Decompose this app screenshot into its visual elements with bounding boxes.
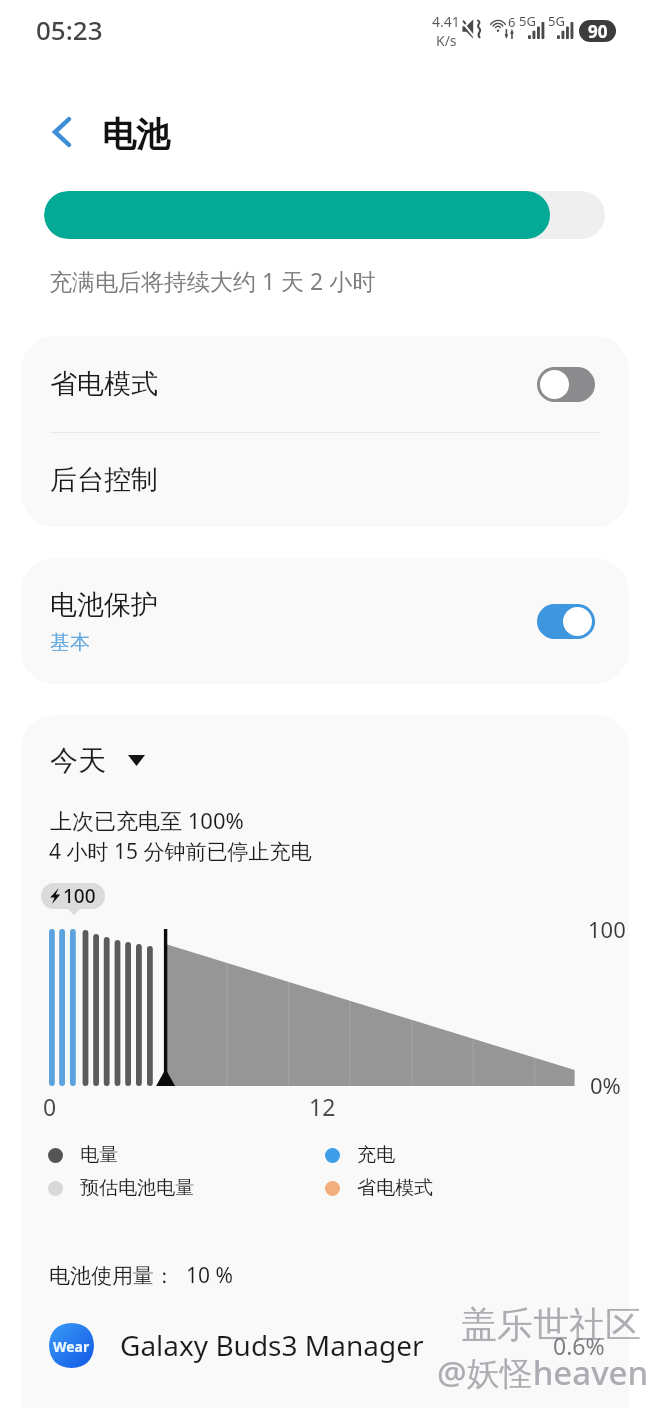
- staticText: 电池保护: [50, 588, 158, 622]
- staticText: 12: [309, 1091, 336, 1122]
- staticText: @妖怪heaven: [437, 1350, 649, 1395]
- staticText: 充电: [357, 1143, 395, 1167]
- button[interactable]: Enabled toggle: [537, 604, 595, 639]
- button[interactable]: Wear: [21, 1306, 629, 1384]
- staticText: 0: [43, 1091, 57, 1122]
- button[interactable]: 后台控制: [21, 433, 629, 527]
- staticText: 90: [588, 20, 608, 42]
- staticText: K/s: [436, 31, 457, 50]
- staticText: 充满电后将持续大约 1 天 2 小时: [49, 265, 376, 296]
- staticText: 电量: [80, 1143, 118, 1167]
- button[interactable]: Back: [37, 107, 87, 157]
- staticText: 上次已充电至 100%: [50, 805, 244, 835]
- staticText: 6: [508, 13, 516, 31]
- staticText: 后台控制: [50, 463, 158, 497]
- staticText: 省电模式: [357, 1176, 433, 1200]
- staticText: 省电模式: [50, 367, 158, 401]
- button[interactable]: Disabled toggle: [537, 367, 595, 402]
- staticText: 100: [588, 914, 626, 944]
- staticText: 4 小时 15 分钟前已停止充电: [49, 837, 312, 866]
- staticText: Wear: [53, 1337, 90, 1356]
- staticText: 今天: [50, 743, 106, 778]
- staticText: 0%: [590, 1070, 621, 1100]
- staticText: 100: [63, 883, 96, 909]
- button[interactable]: 今天: [42, 735, 153, 786]
- staticText: 电池使用量： 10 %: [49, 1261, 233, 1290]
- staticText: 05:23: [36, 12, 103, 47]
- staticText: 4.41: [432, 12, 460, 31]
- staticText: 基本: [50, 630, 90, 655]
- staticText: 盖乐世社区: [461, 1302, 641, 1347]
- staticText: 预估电池电量: [80, 1176, 194, 1200]
- staticText: Galaxy Buds3 Manager: [120, 1326, 424, 1364]
- staticText: 电池: [102, 113, 170, 156]
- button[interactable]: 省电模式: [21, 336, 629, 432]
- staticText: 0.6%: [553, 1330, 605, 1361]
- staticText: 5G: [548, 12, 565, 30]
- button[interactable]: 电池保护: [21, 558, 629, 684]
- staticText: 5G: [519, 12, 536, 30]
